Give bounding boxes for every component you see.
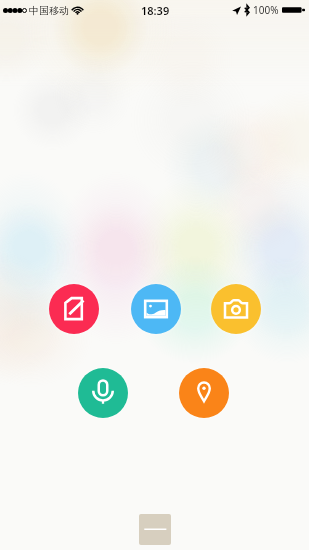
button[interactable]: Close	[139, 514, 171, 545]
staticText: 中国移动	[29, 4, 69, 17]
button[interactable]: Camera	[211, 284, 261, 334]
button[interactable]: Photo	[131, 284, 181, 334]
button[interactable]: Voice memo	[78, 368, 128, 418]
staticText: 100%	[253, 3, 279, 17]
button[interactable]: Note	[49, 284, 99, 334]
button[interactable]: Location	[179, 368, 229, 418]
staticText: 18:39	[141, 3, 170, 18]
